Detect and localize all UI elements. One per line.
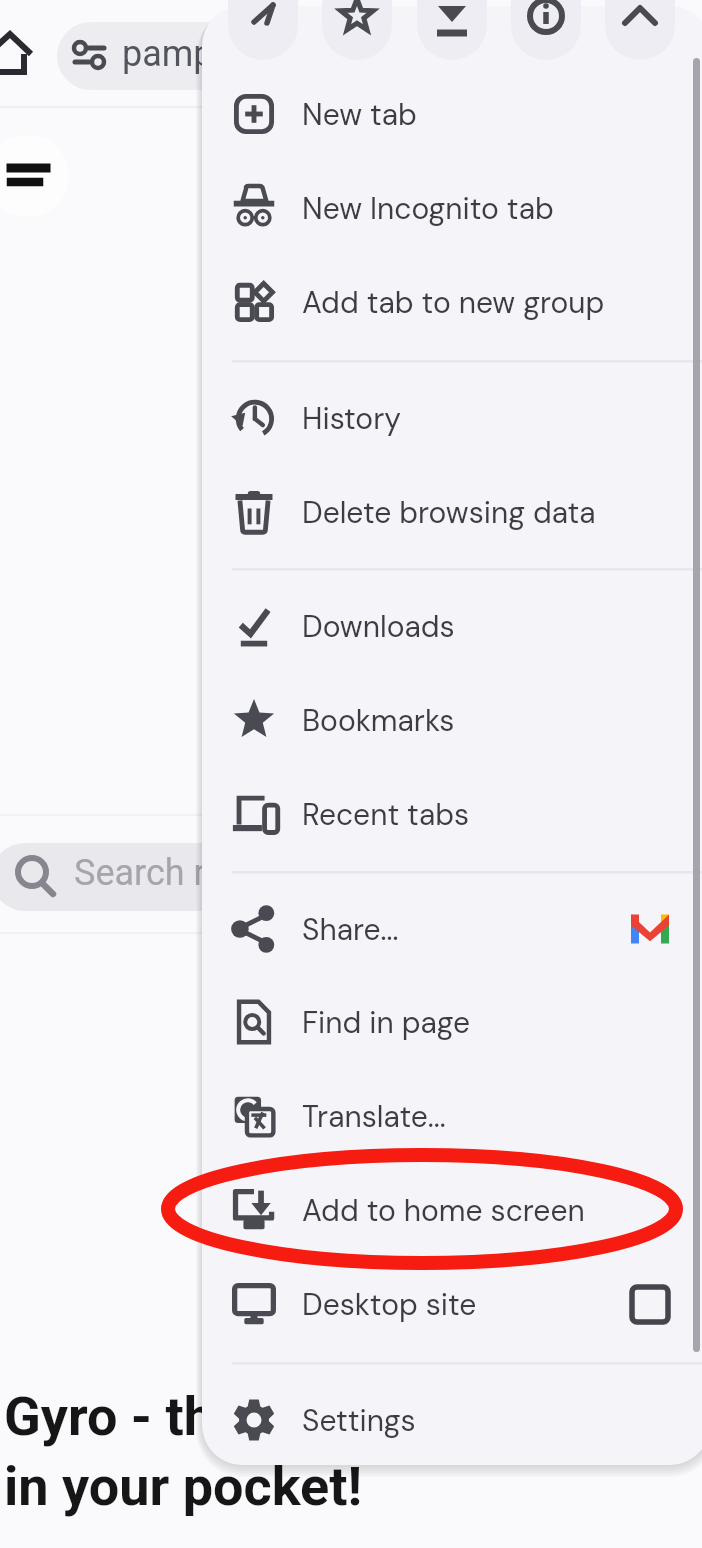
button[interactable]: Find in page bbox=[202, 975, 702, 1069]
staticText: New tab bbox=[302, 95, 417, 134]
staticText: Delete browsing data bbox=[302, 493, 596, 532]
button[interactable]: Share... bbox=[202, 882, 702, 976]
button[interactable]: Download page bbox=[417, 0, 487, 60]
staticText: Share... bbox=[302, 910, 399, 949]
button[interactable]: Home bbox=[0, 22, 54, 90]
button[interactable]: History bbox=[202, 371, 702, 465]
button[interactable]: Bookmark this page bbox=[322, 0, 392, 60]
button[interactable]: Forward bbox=[228, 0, 298, 60]
staticText: Settings bbox=[302, 1401, 416, 1440]
button[interactable]: Search bbox=[0, 843, 281, 911]
staticText: New Incognito tab bbox=[302, 189, 554, 228]
staticText: Add tab to new group bbox=[302, 283, 605, 322]
button[interactable]: Downloads bbox=[202, 579, 702, 673]
staticText: in your pocket! bbox=[4, 1455, 363, 1518]
staticText: Translate... bbox=[302, 1097, 446, 1136]
button[interactable]: Translate... bbox=[202, 1069, 702, 1163]
button[interactable]: New Incognito tab bbox=[202, 161, 702, 255]
staticText: Recent tabs bbox=[302, 795, 470, 834]
staticText: Search m bbox=[74, 852, 226, 894]
button[interactable]: Desktop site bbox=[202, 1257, 702, 1351]
button[interactable]: New tab bbox=[202, 67, 702, 161]
staticText: pamp bbox=[122, 33, 214, 75]
staticText: Add to home screen bbox=[302, 1191, 585, 1230]
staticText: Desktop site bbox=[302, 1285, 477, 1324]
button[interactable]: Add tab to new group bbox=[202, 255, 702, 349]
button[interactable]: Close menu bbox=[605, 0, 675, 60]
button[interactable]: Recent tabs bbox=[202, 767, 702, 861]
button[interactable]: Desktop site toggle bbox=[625, 1280, 675, 1330]
button[interactable]: Menu bbox=[0, 135, 69, 217]
button[interactable]: Page info bbox=[511, 0, 581, 60]
button[interactable]: Settings bbox=[202, 1373, 702, 1467]
staticText: Downloads bbox=[302, 607, 455, 646]
button[interactable]: Add to home screen bbox=[202, 1163, 702, 1257]
staticText: Gyro - th bbox=[4, 1385, 215, 1448]
staticText: History bbox=[302, 399, 401, 438]
button[interactable]: Address and search bar bbox=[57, 22, 387, 90]
button[interactable]: Bookmarks bbox=[202, 673, 702, 767]
staticText: Find in page bbox=[302, 1003, 470, 1042]
button[interactable]: Delete browsing data bbox=[202, 465, 702, 559]
staticText: Bookmarks bbox=[302, 701, 455, 740]
